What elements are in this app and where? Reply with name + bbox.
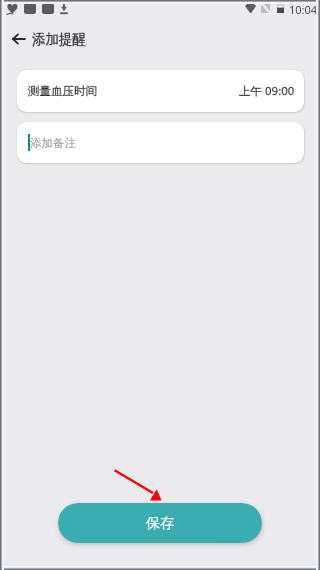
staticText: 添加备注 <box>30 136 76 150</box>
button[interactable]: Back <box>7 27 30 50</box>
button[interactable]: 保存 <box>58 503 262 543</box>
staticText: 上午 09:00 <box>239 83 295 99</box>
staticText: 测量血压时间 <box>28 84 97 98</box>
staticText: 保存 <box>146 515 174 533</box>
staticText: 10:04 <box>289 2 318 17</box>
staticText: 添加提醒 <box>32 31 86 48</box>
staticText: 上午 09:00 <box>239 83 295 99</box>
staticText: 添加提醒 <box>32 31 86 48</box>
button[interactable]: 添加备注 <box>17 122 304 163</box>
button[interactable]: 测量血压时间 <box>17 70 304 112</box>
staticText: 测量血压时间 <box>28 84 97 98</box>
